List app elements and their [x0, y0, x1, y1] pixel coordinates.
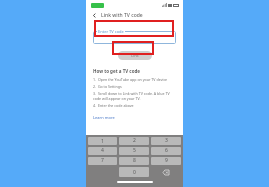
staticText: Enter TV code	[98, 29, 124, 34]
staticText: Link with TV code	[101, 12, 143, 19]
staticText: 6	[165, 147, 168, 154]
button[interactable]: 3	[151, 137, 181, 145]
button[interactable]: Link	[118, 51, 152, 60]
staticText: 1	[101, 138, 104, 145]
button[interactable]: 9	[151, 157, 181, 165]
staticText: 0	[133, 169, 136, 176]
staticText: How to get a TV code	[93, 68, 140, 74]
button[interactable]: 5	[119, 147, 149, 155]
staticText: 3. Scroll down to Link with TV code. A b…	[93, 91, 176, 101]
button[interactable]: Back	[90, 11, 99, 20]
staticText: 1. Open the YouTube app on your TV devic…	[93, 77, 168, 82]
button[interactable]: 7	[88, 157, 117, 165]
staticText: 5	[133, 147, 136, 154]
staticText: 2. Go to Settings	[93, 84, 122, 89]
button[interactable]: 8	[119, 157, 149, 165]
staticText: Link	[131, 53, 139, 58]
staticText: 3	[165, 137, 168, 144]
staticText: 4. Enter the code above	[93, 103, 134, 108]
staticText: 8	[133, 157, 136, 164]
staticText: 9	[165, 157, 168, 164]
staticText: 4	[101, 147, 104, 154]
button[interactable]: 4	[88, 147, 117, 155]
button[interactable]: Backspace	[151, 167, 181, 177]
button[interactable]: Enter TV code	[93, 31, 176, 44]
button[interactable]: 2	[119, 137, 149, 145]
button[interactable]: Learn more	[93, 115, 115, 120]
button[interactable]: 0	[119, 167, 149, 177]
staticText: 7	[101, 157, 104, 164]
staticText: Learn more	[93, 115, 115, 120]
button[interactable]: 1	[88, 137, 117, 145]
staticText: 2	[133, 137, 136, 144]
button[interactable]: 6	[151, 147, 181, 155]
